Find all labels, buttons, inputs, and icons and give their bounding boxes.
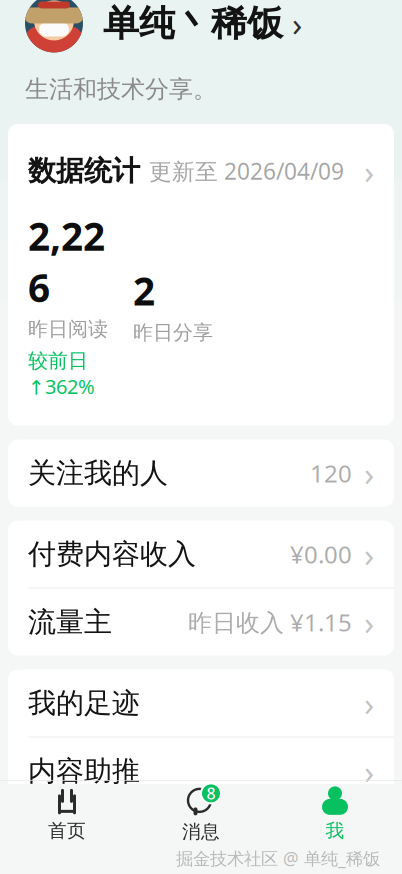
staticText: 消息	[182, 820, 220, 843]
staticText: 较前日↑362%	[28, 348, 95, 399]
staticText: ›	[364, 749, 374, 793]
staticText: ›	[364, 532, 374, 576]
staticText: ›	[364, 149, 374, 193]
staticText: 2,226	[28, 210, 105, 313]
staticText: 昨日分享	[133, 320, 213, 345]
button[interactable]: 付费内容收入	[8, 521, 394, 588]
staticText: 更新至 2026/04/09	[149, 156, 344, 186]
staticText: 掘金技术社区 @ 单纯_稀饭	[176, 847, 380, 870]
button[interactable]: 8	[134, 787, 268, 843]
staticText: ›	[364, 830, 374, 874]
staticText: ›	[364, 681, 374, 725]
staticText: ›	[364, 600, 374, 644]
button[interactable]: 我	[268, 787, 402, 843]
staticText: 我的足迹	[28, 686, 140, 720]
staticText: 2	[133, 265, 155, 316]
staticText: ›	[364, 451, 374, 495]
staticText: 120	[310, 457, 352, 489]
staticText: ›	[292, 1, 302, 46]
staticText: 传图片到素材库	[28, 835, 224, 869]
staticText: 8	[206, 783, 215, 804]
staticText: 内容助推	[28, 754, 140, 788]
button[interactable]: 传图片到素材库	[8, 819, 394, 874]
staticText: ¥0.00	[290, 538, 352, 570]
staticText: 我	[325, 819, 344, 842]
staticText: 生活和技术分享。	[25, 74, 217, 104]
button[interactable]: 内容助推	[8, 738, 394, 805]
button[interactable]: 单纯丶稀饭	[0, 0, 402, 52]
button[interactable]: 首页	[0, 787, 134, 843]
staticText: 首页	[48, 819, 86, 842]
button[interactable]: 关注我的人	[8, 440, 394, 507]
staticText: 昨日阅读	[28, 317, 108, 341]
staticText: 关注我的人	[28, 456, 168, 490]
button[interactable]: 我的足迹	[8, 670, 394, 737]
staticText: 单纯丶稀饭	[103, 1, 283, 45]
button[interactable]: 流量主	[8, 589, 394, 656]
staticText: 昨日收入 ¥1.15	[188, 606, 352, 638]
staticText: 付费内容收入	[28, 537, 196, 571]
staticText: 流量主	[28, 605, 112, 639]
staticText: 数据统计	[28, 154, 140, 188]
button[interactable]: 数据统计	[8, 124, 394, 426]
